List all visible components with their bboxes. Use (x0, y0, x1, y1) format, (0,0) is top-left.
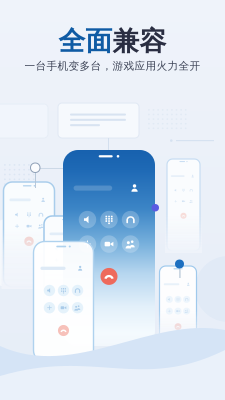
staticText: 一台手机变多台，游戏应用火力全开 (24, 59, 200, 72)
staticText: 兼容 (112, 25, 166, 57)
staticText: 全面 (58, 25, 112, 57)
